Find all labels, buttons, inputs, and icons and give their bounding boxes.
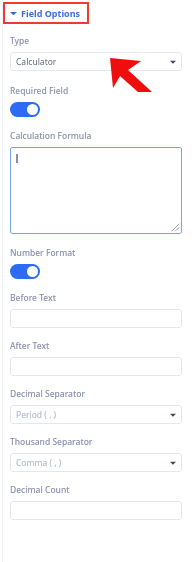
button[interactable]: Field Options — [3, 2, 89, 24]
button[interactable] — [10, 357, 182, 376]
staticText: Before Text — [10, 292, 56, 304]
staticText: Calculator — [16, 56, 170, 68]
staticText: After Text — [10, 340, 50, 352]
button[interactable] — [10, 501, 182, 520]
staticText: Calculation Formula — [10, 130, 92, 142]
staticText: Thousand Separator — [10, 436, 93, 448]
button[interactable]: Calculator — [10, 52, 182, 71]
staticText: Decimal Separator — [10, 388, 85, 400]
button[interactable]: Comma ( , ) — [10, 453, 182, 472]
staticText: Number Format — [10, 247, 76, 259]
staticText: Field Options — [21, 7, 81, 19]
staticText: Decimal Count — [10, 484, 70, 496]
staticText: Period ( . ) — [16, 409, 170, 421]
button[interactable]: Period ( . ) — [10, 405, 182, 424]
button[interactable]: Required Field toggle — [10, 102, 40, 117]
button[interactable]: Calculation formula input — [10, 147, 182, 234]
staticText: Required Field — [10, 85, 69, 97]
button[interactable] — [10, 309, 182, 328]
button[interactable]: Number Format toggle — [10, 264, 40, 279]
staticText: Comma ( , ) — [16, 457, 170, 469]
staticText: Type — [10, 35, 30, 47]
